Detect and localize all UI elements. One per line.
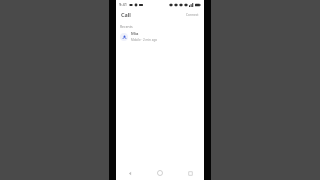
button[interactable]: Connect bbox=[185, 12, 200, 18]
button[interactable]: Home bbox=[154, 167, 166, 179]
button[interactable]: Back bbox=[124, 167, 136, 179]
staticText: Connect bbox=[186, 13, 199, 17]
button[interactable]: Mia bbox=[116, 30, 204, 43]
staticText: Recents bbox=[120, 24, 133, 29]
button[interactable]: Recents bbox=[184, 167, 196, 179]
staticText: Mia bbox=[131, 31, 139, 37]
staticText: Call bbox=[121, 11, 131, 18]
staticText: Mobile · 2 min ago bbox=[131, 38, 158, 42]
staticText: 9:41 bbox=[119, 2, 127, 7]
button[interactable]: Call bbox=[120, 10, 132, 19]
